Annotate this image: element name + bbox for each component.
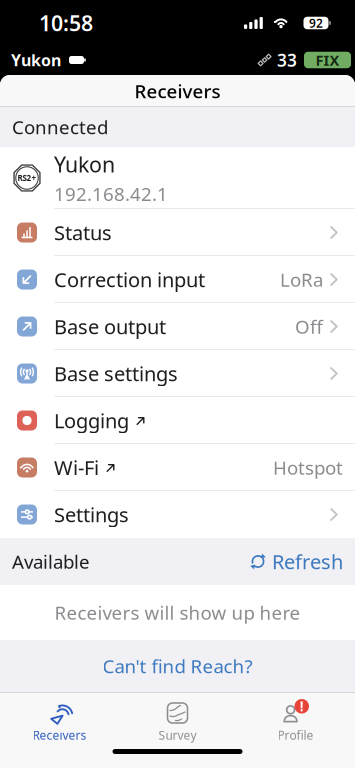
staticText: Refresh: [272, 548, 343, 575]
button[interactable]: Receivers: [0, 698, 118, 746]
staticText: FIX: [315, 50, 339, 70]
button[interactable]: Yukon battery: [0, 49, 86, 71]
staticText: 92: [309, 15, 323, 31]
staticText: Status: [54, 219, 112, 246]
staticText: Connected: [12, 115, 108, 139]
button[interactable]: Settings: [0, 491, 355, 538]
button[interactable]: Solution status FIX: [297, 52, 355, 68]
staticText: 192.168.42.1: [54, 181, 168, 206]
staticText: Receivers: [134, 79, 220, 103]
staticText: Receivers will show up here: [54, 600, 300, 625]
button[interactable]: Logging: [0, 397, 355, 444]
staticText: Yukon: [54, 150, 115, 178]
staticText: 33: [277, 48, 297, 71]
staticText: Survey: [158, 727, 196, 743]
staticText: RS2+: [17, 173, 36, 183]
staticText: Base output: [54, 313, 166, 340]
staticText: Hotspot: [273, 455, 343, 480]
staticText: Can't find Reach?: [102, 654, 252, 678]
staticText: Yukon: [11, 49, 61, 71]
button[interactable]: Survey: [118, 698, 236, 746]
staticText: Off: [295, 314, 323, 339]
staticText: Base settings: [54, 360, 178, 387]
staticText: Logging: [54, 407, 129, 434]
button[interactable]: Status: [0, 209, 355, 256]
button[interactable]: Can't find Reach?: [102, 654, 252, 678]
button[interactable]: Base settings: [0, 350, 355, 397]
staticText: Wi-Fi: [54, 454, 99, 481]
button[interactable]: RS2+: [0, 147, 355, 209]
button[interactable]: Wi-Fi: [0, 444, 355, 491]
button[interactable]: !: [236, 698, 354, 746]
button[interactable]: Satellites count: [257, 48, 297, 71]
button[interactable]: Base output: [0, 303, 355, 350]
staticText: 10:58: [39, 9, 93, 37]
button[interactable]: Correction input: [0, 256, 355, 303]
staticText: Correction input: [54, 266, 205, 293]
button[interactable]: Refresh: [250, 548, 355, 575]
staticText: Available: [12, 549, 90, 574]
staticText: Receivers: [32, 727, 86, 743]
staticText: !: [300, 697, 304, 715]
staticText: LoRa: [280, 267, 323, 292]
staticText: Settings: [54, 501, 129, 528]
staticText: Profile: [277, 727, 313, 743]
